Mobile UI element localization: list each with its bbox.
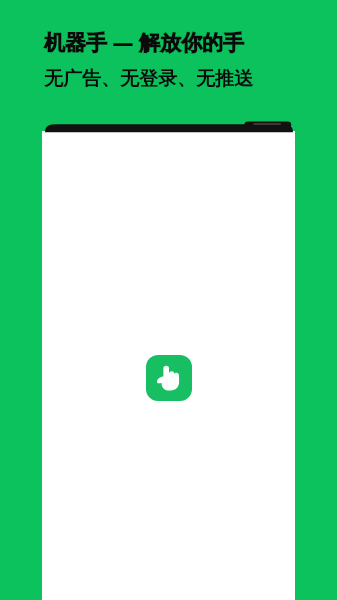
staticText: 无广告、无登录、无推送	[44, 67, 253, 91]
staticText: 机器手 — 解放你的手	[44, 28, 244, 57]
button[interactable]: 机器手 app icon	[146, 355, 192, 401]
